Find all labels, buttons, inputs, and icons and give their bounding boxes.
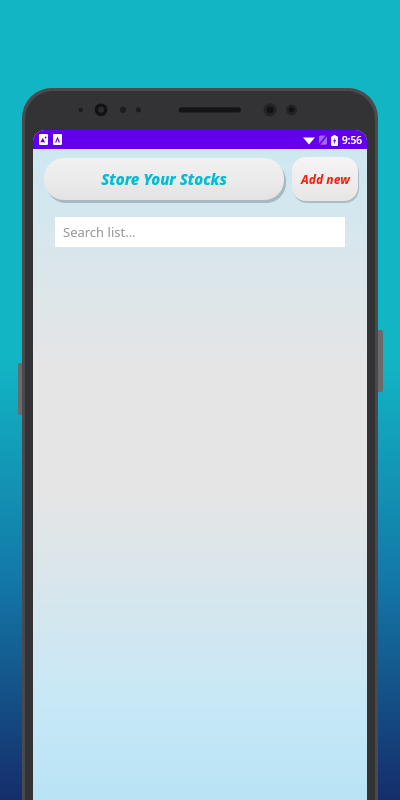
button[interactable]: Add new — [291, 155, 359, 203]
staticText: Search list... — [63, 223, 136, 241]
staticText: 9:56 — [342, 133, 362, 147]
staticText: Store Your Stocks — [101, 169, 227, 189]
button[interactable]: Search list... — [55, 217, 345, 247]
button[interactable]: Store Your Stocks — [44, 157, 284, 201]
staticText: Add new — [301, 171, 350, 187]
